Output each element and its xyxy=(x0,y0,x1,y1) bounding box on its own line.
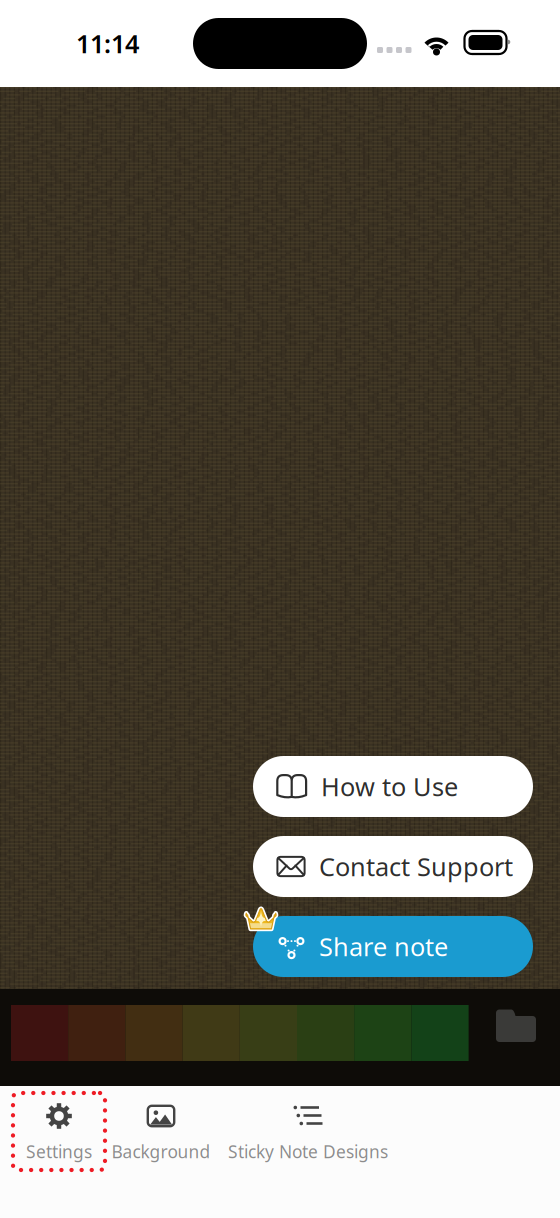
button[interactable]: Settings xyxy=(13,1093,105,1170)
staticText: How to Use xyxy=(321,770,458,803)
staticText: Settings xyxy=(26,1140,92,1163)
button[interactable]: Background xyxy=(105,1093,217,1170)
staticText: 11:14 xyxy=(76,27,139,60)
staticText: Background xyxy=(111,1140,210,1163)
staticText: Sticky Note Designs xyxy=(228,1140,388,1163)
button[interactable]: Contact Support xyxy=(253,836,533,897)
button[interactable]: How to Use xyxy=(253,756,533,817)
staticText: Contact Support xyxy=(319,850,513,883)
staticText: Share note xyxy=(319,930,448,963)
button[interactable]: Saved backgrounds xyxy=(484,989,548,1064)
button[interactable]: Share note xyxy=(253,916,533,977)
button[interactable]: Sticky Note Designs xyxy=(217,1093,399,1170)
